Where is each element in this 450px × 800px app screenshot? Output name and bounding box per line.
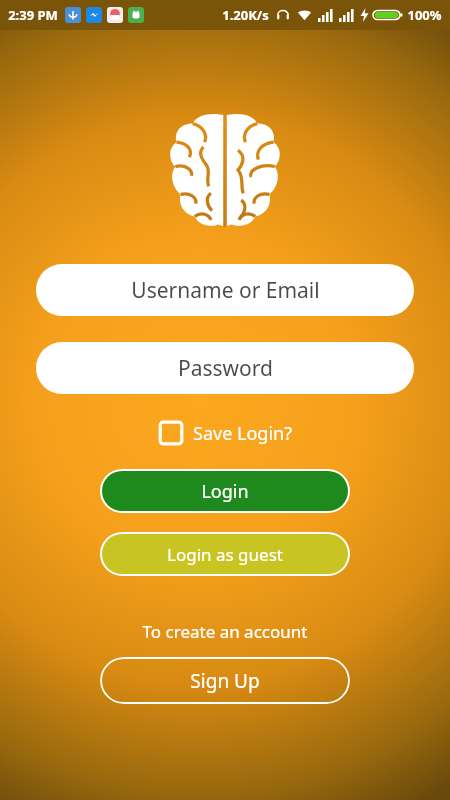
- button[interactable]: Username or Email: [36, 264, 414, 316]
- staticText: 100%: [407, 6, 442, 24]
- staticText: Save Login?: [193, 421, 292, 446]
- staticText: Username or Email: [131, 276, 320, 305]
- staticText: 2:39 PM: [8, 6, 58, 24]
- staticText: Login: [201, 479, 249, 504]
- button[interactable]: Save Login?: [0, 420, 450, 446]
- button[interactable]: Password: [36, 342, 414, 394]
- staticText: To create an account: [0, 620, 450, 643]
- button[interactable]: Login as guest: [102, 534, 348, 574]
- staticText: Password: [178, 354, 273, 383]
- staticText: Login as guest: [167, 543, 283, 566]
- button[interactable]: Login: [102, 471, 348, 511]
- button[interactable]: Sign Up: [100, 657, 350, 704]
- staticText: 1.20K/s: [222, 6, 269, 24]
- staticText: Sign Up: [190, 668, 260, 694]
